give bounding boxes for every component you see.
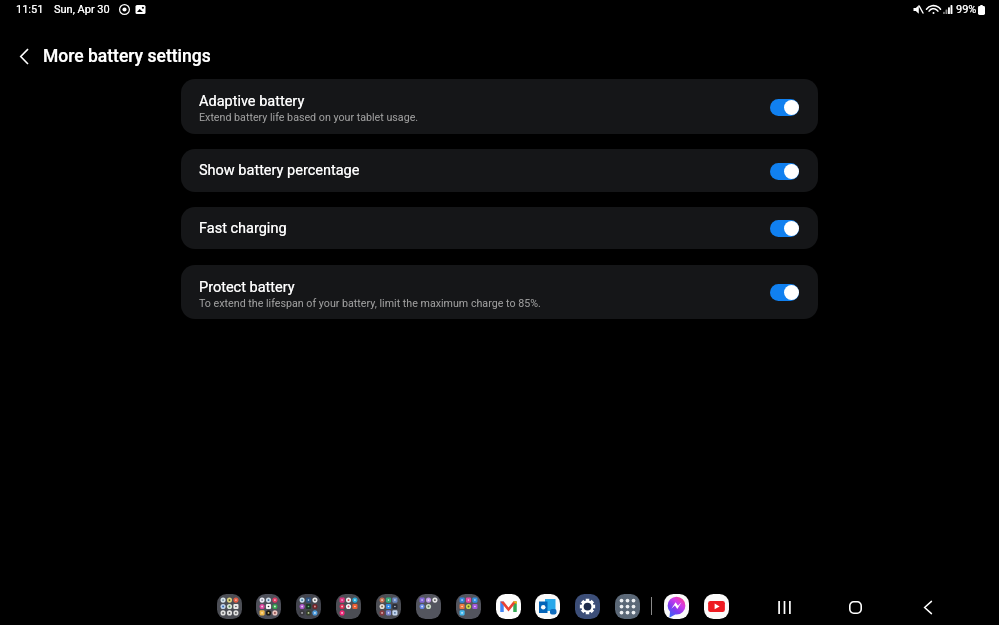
- staticText: Extend battery life based on your tablet…: [199, 111, 419, 124]
- staticText: 11:51: [16, 3, 44, 16]
- button[interactable]: Folder 6: [416, 594, 441, 619]
- button[interactable]: Fast charging: [181, 207, 818, 249]
- button[interactable]: Home: [842, 594, 868, 620]
- button[interactable]: Folder 1: [217, 594, 242, 619]
- staticText: Adaptive battery: [199, 93, 305, 110]
- staticText: More battery settings: [43, 46, 211, 67]
- button[interactable]: On: [770, 219, 799, 237]
- staticText: 99%: [956, 3, 977, 16]
- staticText: Show battery percentage: [199, 162, 360, 179]
- button[interactable]: Show battery percentage: [181, 149, 818, 192]
- button[interactable]: Gmail: [496, 594, 521, 619]
- button[interactable]: YouTube: [704, 594, 729, 619]
- button[interactable]: Folder 2: [256, 594, 281, 619]
- button[interactable]: Folder 5: [376, 594, 401, 619]
- button[interactable]: On: [770, 283, 799, 301]
- staticText: Sun, Apr 30: [54, 3, 110, 16]
- button[interactable]: Protect battery: [181, 265, 818, 319]
- button[interactable]: Recents: [771, 594, 797, 620]
- button[interactable]: Outlook: [535, 594, 560, 619]
- button[interactable]: Back: [915, 594, 941, 620]
- button[interactable]: Navigate up: [8, 40, 40, 72]
- button[interactable]: Folder 3: [296, 594, 321, 619]
- button[interactable]: On: [770, 162, 799, 180]
- staticText: To extend the lifespan of your battery, …: [199, 297, 541, 310]
- button[interactable]: Settings: [575, 594, 600, 619]
- button[interactable]: Apps: [615, 594, 640, 619]
- staticText: Fast charging: [199, 220, 287, 237]
- button[interactable]: On: [770, 98, 799, 116]
- button[interactable]: Messenger: [664, 594, 689, 619]
- staticText: Protect battery: [199, 279, 295, 296]
- button[interactable]: Folder 4: [336, 594, 361, 619]
- button[interactable]: Folder 7: [456, 594, 481, 619]
- button[interactable]: Adaptive battery: [181, 79, 818, 134]
